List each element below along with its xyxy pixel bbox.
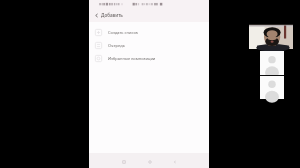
button[interactable]: Recents [118,155,130,167]
button[interactable]: Participant [260,51,284,75]
button[interactable]: Избранные композиции [89,52,209,65]
button[interactable]: Home [144,155,156,167]
staticText: Избранные композиции [108,56,156,61]
staticText: Создать список [108,30,138,35]
button[interactable]: Back [92,11,100,19]
button[interactable]: Participant [260,76,284,99]
button[interactable]: Создать список [89,26,209,39]
staticText: Очередь [108,43,125,48]
button[interactable]: Video participant [249,24,293,49]
button[interactable]: Очередь [89,39,209,52]
staticText: Добавить [101,12,123,18]
